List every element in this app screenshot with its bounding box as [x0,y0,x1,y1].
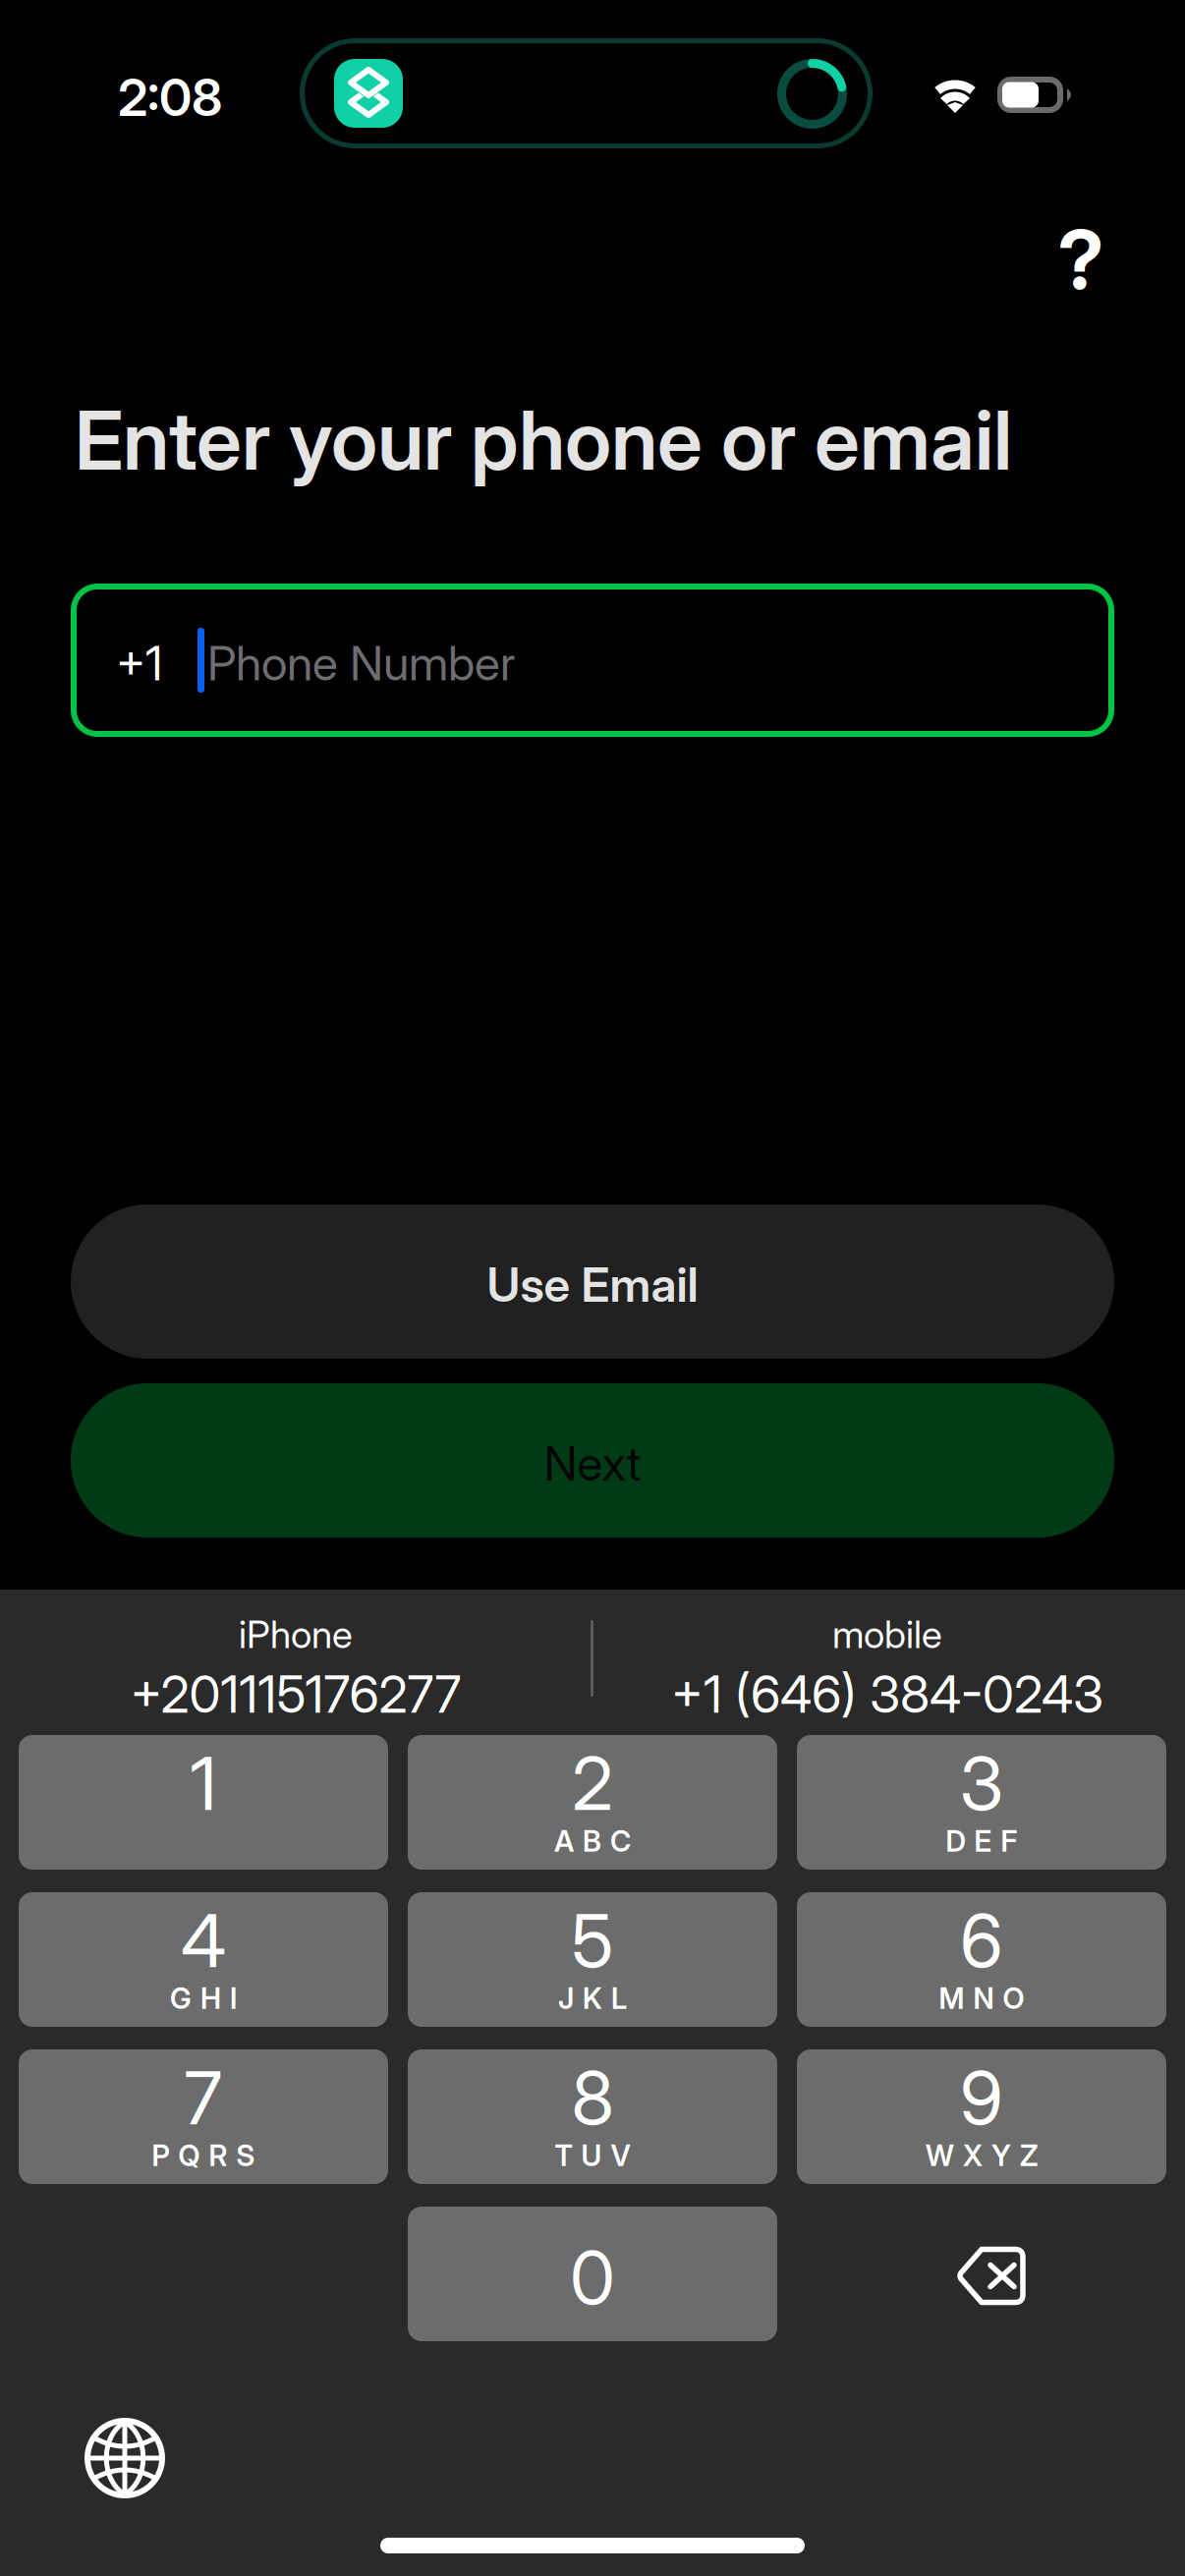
staticText: T [555,2138,572,2173]
button[interactable]: 7 [19,2049,388,2184]
staticText: 8 [571,2053,614,2142]
button[interactable]: Delete [797,2207,1166,2341]
staticText: A [554,1824,574,1859]
staticText: Z [1020,2138,1038,2173]
staticText: K [583,1981,602,2016]
staticText: Use Email [487,1256,698,1313]
staticText: C [610,1824,631,1859]
button[interactable]: 1 [19,1735,388,1870]
button[interactable]: Next keyboard [56,2389,194,2527]
button[interactable]: Help [1022,200,1140,318]
staticText: +1 [116,635,162,692]
button[interactable]: 9 [797,2049,1166,2184]
staticText: 3 [959,1739,1004,1827]
button[interactable]: 4 [19,1892,388,2027]
button[interactable]: Use Email [71,1204,1114,1359]
staticText: G [170,1981,192,2016]
staticText: N [973,1981,994,2016]
staticText: 4 [181,1896,226,1985]
staticText: X [963,2138,983,2173]
staticText: W [926,2138,954,2173]
staticText: Phone Number [207,635,515,692]
staticText: J [558,1981,574,2016]
staticText: 7 [184,2053,223,2142]
staticText: I [230,1981,237,2016]
staticText: Enter your phone or email [75,391,1012,489]
button[interactable]: 6 [797,1892,1166,2027]
button[interactable]: 3 [797,1735,1166,1870]
staticText: E [974,1824,992,1859]
staticText: Q [178,2138,200,2173]
staticText: S [236,2138,255,2173]
button[interactable]: Next [71,1383,1114,1538]
button[interactable]: 2 [408,1735,777,1870]
staticText: iPhone [239,1611,353,1657]
button[interactable]: 5 [408,1892,777,2027]
staticText: P [152,2138,169,2173]
button[interactable]: 8 [408,2049,777,2184]
staticText: +1 (646) 384-0243 [671,1663,1103,1725]
staticText: Y [991,2138,1011,2173]
staticText: mobile [832,1611,942,1657]
staticText: L [611,1981,627,2016]
staticText: V [611,2138,630,2173]
staticText: 5 [571,1896,614,1985]
staticText: 1 [190,1739,217,1827]
staticText: 2 [572,1739,613,1827]
staticText: +201115176277 [130,1663,461,1725]
staticText: H [200,1981,221,2016]
button[interactable]: 0 [408,2207,777,2341]
staticText: 2:08 [118,66,222,128]
staticText: 0 [570,2233,615,2322]
staticText: Next [544,1435,641,1492]
staticText: F [1001,1824,1017,1859]
staticText: ? [1058,210,1104,308]
staticText: 9 [960,2053,1003,2142]
staticText: B [583,1824,601,1859]
staticText: O [1003,1981,1024,2016]
staticText: U [581,2138,602,2173]
staticText: R [209,2138,227,2173]
staticText: 6 [960,1896,1003,1985]
staticText: D [946,1824,965,1859]
staticText: M [939,1981,964,2016]
